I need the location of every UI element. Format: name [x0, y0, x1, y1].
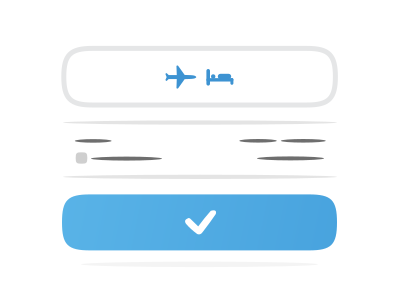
button[interactable]: Flights and hotels	[64, 48, 335, 105]
button[interactable]: Confirm	[62, 194, 337, 250]
